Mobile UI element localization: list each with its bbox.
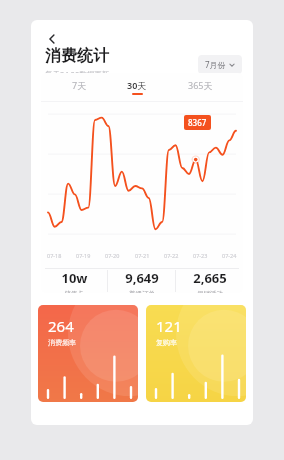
staticText: 储值卡 xyxy=(64,290,84,293)
staticText: 2,665 xyxy=(193,269,227,287)
staticText: 7天 xyxy=(72,79,87,91)
staticText: 9,649 xyxy=(125,269,159,287)
staticText: 每天24:00数据更新 xyxy=(45,69,110,79)
staticText: 07-24 xyxy=(222,252,237,259)
button[interactable]: 7天 xyxy=(62,77,97,97)
staticText: 07-23 xyxy=(193,252,208,259)
button[interactable]: 9,649 xyxy=(108,269,175,293)
button[interactable]: Back xyxy=(39,26,65,52)
staticText: 07-20 xyxy=(105,252,120,259)
staticText: 促销活动 xyxy=(197,290,223,293)
button[interactable]: 10w xyxy=(41,269,107,293)
staticText: 8367 xyxy=(188,117,207,128)
button[interactable]: 2,665 xyxy=(176,269,243,293)
staticText: 消费统计 xyxy=(45,46,109,66)
staticText: 30天 xyxy=(127,79,147,91)
staticText: 复购率 xyxy=(156,338,177,347)
staticText: 10w xyxy=(61,269,88,287)
staticText: 07-21 xyxy=(135,252,150,259)
button[interactable]: 7月份 xyxy=(198,55,242,74)
staticText: 07-19 xyxy=(76,252,91,259)
staticText: 365天 xyxy=(188,79,213,91)
button[interactable]: 121 xyxy=(146,305,246,402)
staticText: 121 xyxy=(156,316,182,336)
staticText: 264 xyxy=(48,316,74,336)
staticText: 07-22 xyxy=(164,252,179,259)
button[interactable]: 264 xyxy=(38,305,138,402)
button[interactable]: 365天 xyxy=(178,77,223,97)
staticText: 普通订单 xyxy=(129,290,155,293)
staticText: 消费频率 xyxy=(48,338,76,347)
staticText: 7月份 xyxy=(205,59,226,70)
button[interactable]: 30天 xyxy=(117,77,157,97)
staticText: 07-18 xyxy=(47,252,62,259)
